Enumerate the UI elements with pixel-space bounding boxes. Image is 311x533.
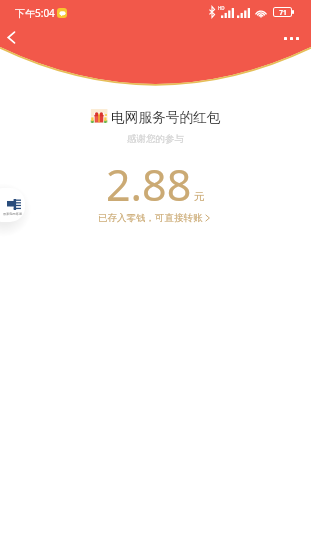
staticText: 感谢您的参与 — [127, 133, 184, 145]
staticText: 71 — [279, 8, 287, 16]
staticText: 国家电网客服 — [3, 212, 23, 216]
button[interactable]: 已存入零钱，可直接转账 — [98, 212, 213, 224]
button[interactable]: More options — [278, 25, 304, 51]
staticText: 2.88 — [106, 155, 192, 214]
staticText: 下午5:04 — [15, 6, 55, 20]
staticText: 元 — [194, 190, 205, 203]
staticText: 电网服务号的红包 — [111, 109, 221, 126]
button[interactable]: Back — [0, 26, 22, 48]
button[interactable]: State Grid — [0, 188, 25, 222]
staticText: HD — [218, 5, 225, 11]
staticText: 已存入零钱，可直接转账 — [98, 212, 203, 224]
